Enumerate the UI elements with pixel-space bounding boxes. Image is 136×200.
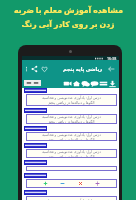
- button[interactable]: درس اول: یادآوری عددنویسی و محاسبه: [22, 126, 119, 143]
- staticText: درس اول: یادآوری عددنویسی و محاسبه: [42, 149, 101, 154]
- button[interactable]: [22, 173, 119, 190]
- button[interactable]: Comments: [81, 79, 90, 88]
- staticText: الگوها و دنباله‌ها در ریاضی پنجم: [48, 137, 95, 141]
- staticText: درس اول: یادآوری عددنویسی و محاسبه: [42, 95, 101, 100]
- staticText: درس اول: یادآوری عددنویسی و محاسبه: [42, 114, 101, 119]
- staticText: زدن بر روی کادر آبی رنگ: [21, 19, 115, 29]
- button[interactable]: Page number: [24, 80, 41, 86]
- staticText: ریاضی پایه پنجم: [63, 66, 103, 73]
- button[interactable]: درس اول: یادآوری عددنویسی و محاسبه: [22, 108, 119, 126]
- button[interactable]: Back: [107, 64, 116, 74]
- button[interactable]: Download: [108, 79, 117, 88]
- button[interactable]: درس اول: یادآوری عددنویسی و محاسبه: [22, 190, 119, 200]
- button[interactable]: Favorite: [40, 64, 49, 74]
- staticText: الگوها و دنباله‌ها در ریاضی پنجم: [48, 100, 95, 105]
- button[interactable]: Book: [99, 79, 108, 88]
- staticText: الگوها و دنباله‌ها در ریاضی پنجم: [48, 119, 95, 124]
- staticText: الگوها و دنباله‌ها در ریاضی پنجم: [48, 154, 95, 158]
- button[interactable]: Home: [72, 79, 81, 88]
- staticText: درس اول: یادآوری عددنویسی و محاسبه: [42, 198, 101, 200]
- button[interactable]: [22, 160, 119, 173]
- staticText: مشاهده آموزش معلم با ضربه: [14, 5, 123, 15]
- button[interactable]: More options: [23, 64, 30, 74]
- button[interactable]: Chat: [90, 79, 99, 88]
- staticText: 16:38: [107, 56, 117, 60]
- button[interactable]: درس اول: یادآوری عددنویسی و محاسبه: [22, 88, 119, 108]
- staticText: درس اول: یادآوری عددنویسی و محاسبه: [42, 132, 101, 137]
- button[interactable]: درس اول: یادآوری عددنویسی و محاسبه: [22, 143, 119, 160]
- button[interactable]: Share: [30, 64, 39, 74]
- button[interactable]: Video: [63, 79, 72, 88]
